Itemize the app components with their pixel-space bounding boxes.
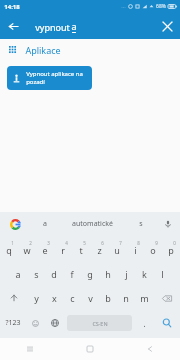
button[interactable]: n [117,286,135,310]
button[interactable]: CS·EN [67,315,132,331]
staticText: . [143,318,146,329]
button[interactable]: w [18,238,36,262]
button[interactable]: o [144,238,162,262]
staticText: m [140,292,149,304]
button[interactable]: s [27,262,45,286]
staticText: e [42,244,48,256]
staticText: a [71,20,77,32]
button[interactable]: x [45,286,63,310]
staticText: vypnout [34,21,71,33]
staticText: v [88,292,93,304]
button[interactable]: Shift [0,286,27,310]
staticText: 4 [65,240,68,246]
staticText: h [105,268,111,280]
button[interactable]: Emoji [26,310,45,336]
button[interactable]: i [126,238,144,262]
button[interactable]: vypnout [34,13,154,39]
button[interactable]: Voice input [156,212,180,236]
staticText: 68% [156,3,166,10]
staticText: CS·EN [92,320,108,327]
staticText: q [6,244,12,256]
button[interactable]: a [30,212,60,236]
staticText: p [168,244,174,256]
staticText: 8 [137,240,140,246]
staticText: f [70,268,74,280]
button[interactable]: f [63,262,81,286]
button[interactable]: l [153,262,171,286]
button[interactable]: s [125,212,156,236]
staticText: 7 [119,240,122,246]
staticText: 5 [83,240,86,246]
button[interactable]: Clear search [154,13,180,39]
staticText: s [34,268,39,280]
button[interactable]: . [135,310,154,336]
button[interactable]: Aplikace [0,39,180,61]
staticText: 1 [11,240,14,246]
button[interactable]: j [117,262,135,286]
staticText: j [125,268,128,280]
staticText: a [15,268,21,280]
button[interactable]: u [108,238,126,262]
button[interactable]: Change language [45,310,64,336]
staticText: y [34,292,39,304]
button[interactable]: h [99,262,117,286]
staticText: 14:18 [4,3,20,11]
button[interactable]: d [45,262,63,286]
button[interactable]: Backspace [153,286,180,310]
button[interactable]: z [90,238,108,262]
button[interactable]: m [135,286,153,310]
staticText: d [51,268,57,280]
button[interactable]: y [27,286,45,310]
staticText: ?123 [5,318,21,328]
button[interactable]: Search [154,310,180,336]
button[interactable]: Google [0,212,30,236]
staticText: r [61,244,65,256]
button[interactable]: Vypnout aplikace na [7,66,92,90]
button[interactable]: automatické [60,212,125,236]
staticText: 9 [155,240,158,246]
staticText: c [70,292,75,304]
staticText: 6 [101,240,104,246]
staticText: z [97,244,102,256]
staticText: x [52,292,57,304]
staticText: g [87,268,93,280]
staticText: k [142,268,147,280]
button[interactable]: p [162,238,180,262]
button[interactable]: a [9,262,27,286]
staticText: b [105,292,111,304]
button[interactable]: b [99,286,117,310]
staticText: a [43,219,47,229]
staticText: 2 [29,240,32,246]
button[interactable]: e [36,238,54,262]
staticText: t [79,244,83,256]
button[interactable]: r [54,238,72,262]
button[interactable]: Home [60,338,120,360]
button[interactable]: ?123 [0,310,26,336]
button[interactable]: Back [0,13,26,39]
staticText: s [139,219,143,229]
staticText: l [161,268,164,280]
button[interactable]: Back [120,338,180,360]
button[interactable]: c [63,286,81,310]
staticText: Aplikace [25,44,61,56]
staticText: u [114,244,120,256]
staticText: i [134,244,137,256]
staticText: w [23,244,31,256]
staticText: 3 [47,240,50,246]
staticText: n [123,292,129,304]
staticText: Vypnout aplikace na [26,70,83,78]
button[interactable]: t [72,238,90,262]
staticText: 0 [173,240,176,246]
button[interactable]: g [81,262,99,286]
button[interactable]: k [135,262,153,286]
staticText: o [150,244,156,256]
staticText: pozadí [26,78,45,86]
button[interactable]: v [81,286,99,310]
button[interactable]: q [0,238,18,262]
button[interactable]: Recents [0,338,60,360]
staticText: automatické [72,219,113,229]
